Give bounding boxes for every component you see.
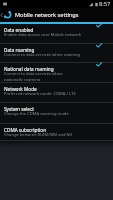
staticText: Network Mode: [4, 86, 37, 92]
staticText: National data roaming: [4, 66, 54, 72]
staticText: Connect to data services when nationally…: [4, 71, 82, 81]
button[interactable]: Network Mode: [0, 83, 113, 103]
button[interactable]: National data roaming: [0, 63, 113, 83]
staticText: Change between RUIM/SIM and NV: [4, 132, 73, 138]
button[interactable]: CDMA subscription: [0, 124, 113, 141]
staticText: Data enabled: [4, 27, 34, 33]
staticText: Mobile network settings: [15, 11, 79, 19]
staticText: Change the CDMA roaming mode: [4, 111, 69, 117]
button[interactable]: Data enabled: [0, 24, 113, 44]
button[interactable]: Navigate up: [0, 8, 13, 22]
staticText: System select: [4, 106, 34, 112]
staticText: CDMA subscription: [4, 127, 47, 133]
staticText: Preferred network mode: CDMA / LTE: [4, 91, 76, 97]
staticText: Connect to data services when roaming: [4, 52, 80, 58]
button[interactable]: Data roaming: [0, 44, 113, 63]
staticText: 8:57: [99, 0, 111, 8]
button[interactable]: System select: [0, 103, 113, 124]
staticText: Enable data access over Mobile network: [4, 32, 81, 38]
staticText: Data roaming: [4, 47, 35, 53]
